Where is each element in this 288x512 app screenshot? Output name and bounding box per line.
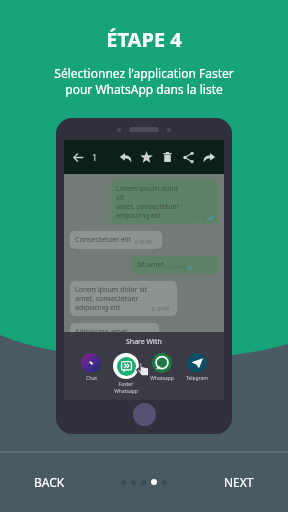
button[interactable]: Adipiscing amet <box>70 323 159 341</box>
button[interactable]: Star <box>139 150 154 165</box>
staticText: Consectetuer elit <box>75 235 131 245</box>
staticText: NEXT <box>224 474 254 490</box>
staticText: Sélectionnez l'application Faster pour W… <box>54 65 234 98</box>
staticText: 5:20 PM <box>189 214 206 220</box>
button[interactable]: Sit amet <box>132 256 218 274</box>
staticText: 5:20 PM <box>132 331 149 337</box>
staticText: Share With <box>126 337 162 347</box>
button[interactable]: Whatsapp <box>147 353 177 382</box>
button[interactable]: Chat <box>76 353 106 382</box>
staticText: 6:18 PM <box>152 306 169 312</box>
button[interactable]: Lorem ipsum dolor sit amet, consectetuer… <box>111 180 218 224</box>
button[interactable]: Back <box>71 150 86 165</box>
button[interactable]: Faster Whatsapp <box>111 353 141 394</box>
staticText: 6:18 PM <box>135 239 152 245</box>
button[interactable]: Forward <box>202 150 217 165</box>
staticText: 1 <box>92 151 98 163</box>
staticText: Adipiscing amet <box>75 327 128 337</box>
staticText: Lorem ipsum dolor sit amet, consectetuer… <box>75 285 148 312</box>
staticText: Faster Whatsapp <box>114 381 138 394</box>
button[interactable]: Lorem ipsum dolor sit amet, consectetuer… <box>70 281 177 316</box>
staticText: 5:20 PM <box>168 264 185 270</box>
button[interactable]: Reply <box>118 150 133 165</box>
staticText: Chat <box>86 375 97 382</box>
staticText: Sit amet <box>137 260 164 270</box>
staticText: BACK <box>34 474 65 490</box>
button[interactable]: BACK <box>26 466 73 498</box>
button[interactable]: Delete <box>160 150 175 165</box>
button[interactable]: Telegram <box>182 353 212 382</box>
staticText: Whatsapp <box>150 375 174 382</box>
button[interactable]: Share <box>181 150 196 165</box>
staticText: Telegram <box>186 375 208 382</box>
button[interactable]: Consectetuer elit <box>70 231 162 249</box>
staticText: ÉTAPE 4 <box>106 26 182 53</box>
staticText: Lorem ipsum dolor sit amet, consectetuer… <box>116 184 185 220</box>
button[interactable]: NEXT <box>216 466 262 498</box>
